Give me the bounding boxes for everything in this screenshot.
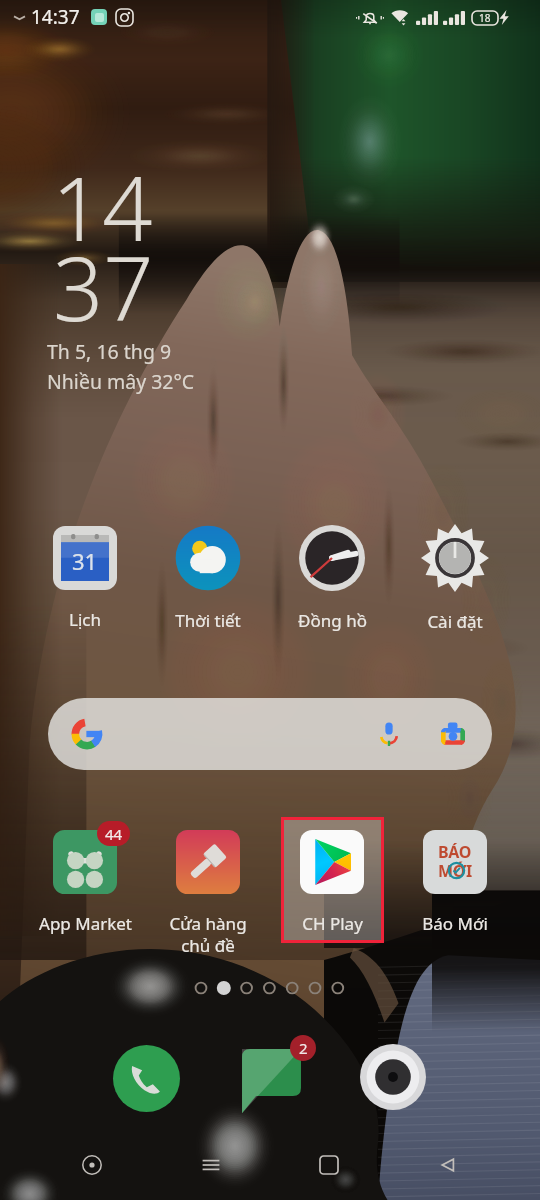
button[interactable]: BÁO [395, 826, 515, 942]
button[interactable]: Cài đặt [395, 520, 515, 640]
button[interactable]: Cửa hàng chủ đề [148, 826, 268, 942]
staticText: Báo Mới [422, 912, 488, 935]
button[interactable]: Assistant [66, 1139, 118, 1191]
staticText: 14 [52, 147, 153, 267]
button[interactable]: Messages [238, 1045, 305, 1112]
button[interactable]: CH Play [272, 826, 392, 942]
button[interactable]: Recents [303, 1139, 355, 1191]
button[interactable]: Phone [113, 1045, 180, 1112]
staticText: Lịch [69, 608, 101, 631]
staticText: Nhiều mây 32°C [47, 368, 195, 395]
staticText: CH Play [302, 912, 363, 935]
button[interactable]: Voice search [48, 698, 492, 770]
staticText: 18 [479, 11, 491, 25]
staticText: BÁO [438, 841, 472, 863]
button[interactable]: 44 [25, 826, 145, 942]
staticText: 37 [53, 227, 154, 347]
staticText: App Market [39, 912, 132, 935]
button[interactable]: Back [422, 1139, 474, 1191]
button[interactable]: Thời tiết [148, 521, 268, 639]
button[interactable]: Đồng hồ [272, 521, 392, 639]
staticText: Đồng hồ [298, 609, 367, 632]
other: Google Lens [438, 719, 468, 749]
staticText: 14:37 [31, 4, 80, 30]
button[interactable]: Menu [185, 1139, 237, 1191]
staticText: Cửa hàng chủ đề [169, 912, 247, 957]
other: Voice search [376, 721, 402, 747]
staticText: MỚI [438, 860, 472, 882]
button[interactable]: 31 [25, 522, 145, 638]
staticText: 31 [72, 546, 98, 576]
button[interactable]: Camera [360, 1044, 426, 1110]
staticText: Cài đặt [427, 610, 483, 633]
staticText: 44 [105, 824, 123, 844]
staticText: 2 [299, 1038, 308, 1058]
staticText: Thời tiết [175, 609, 241, 632]
staticText: Th 5, 16 thg 9 [47, 338, 172, 365]
